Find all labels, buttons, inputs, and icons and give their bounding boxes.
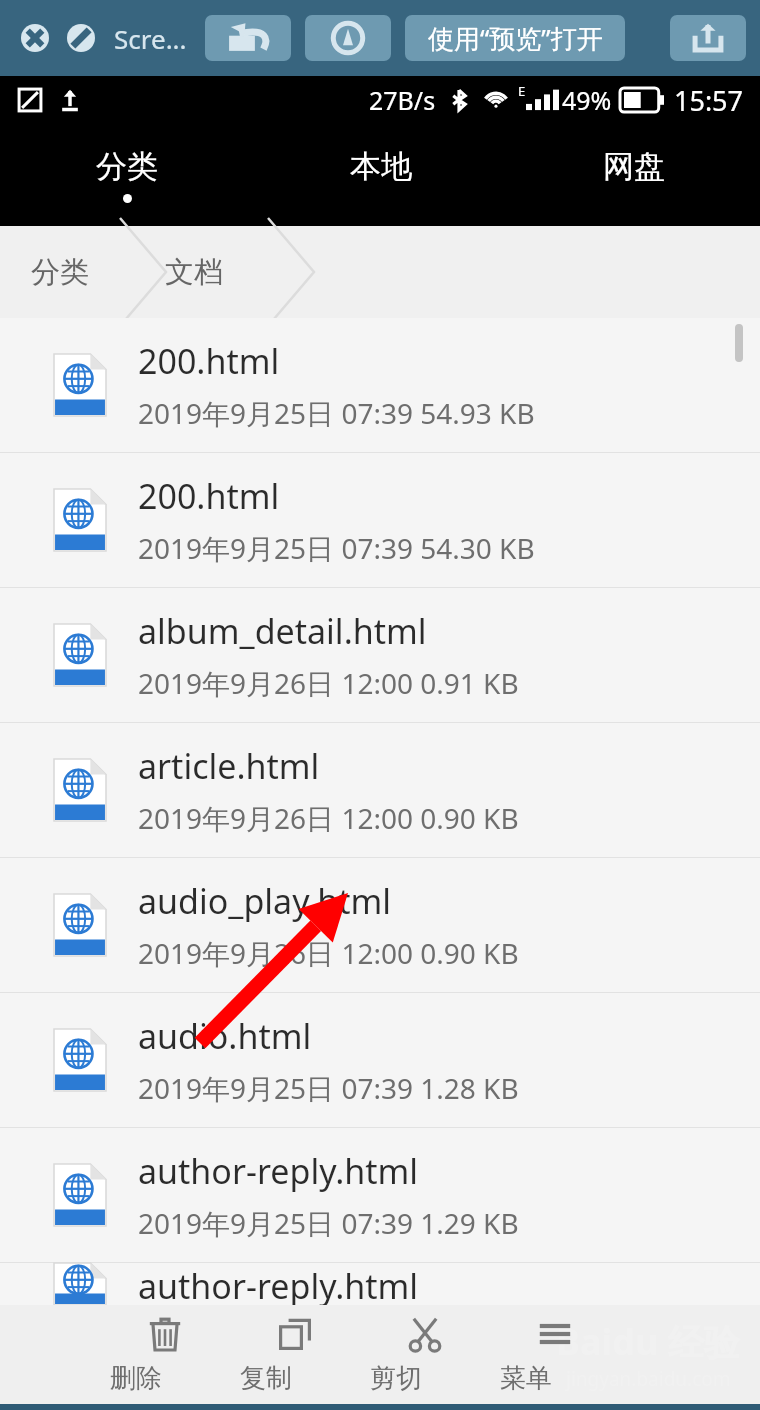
staticText: article.html	[138, 743, 320, 789]
button[interactable]: Share	[670, 15, 746, 61]
staticText: 2019年9月25日 07:39 54.30 KB	[138, 529, 535, 567]
staticText: 剪切	[370, 1362, 480, 1395]
button[interactable]: 菜单	[500, 1314, 610, 1395]
staticText: 2019年9月26日 12:00 0.91 KB	[138, 664, 519, 702]
staticText: E	[518, 82, 526, 100]
button[interactable]: author-reply.html	[0, 1128, 760, 1262]
staticText: 2019年9月25日 07:39 1.29 KB	[138, 1204, 519, 1242]
button[interactable]: 200.html	[0, 453, 760, 587]
button[interactable]: audio_play.html	[0, 858, 760, 992]
button[interactable]: album_detail.html	[0, 588, 760, 722]
button[interactable]: 网盘	[507, 124, 760, 226]
staticText: 网盘	[603, 147, 665, 186]
button[interactable]: audio.html	[0, 993, 760, 1127]
staticText: Scre...	[114, 21, 187, 56]
staticText: 菜单	[500, 1362, 610, 1395]
button[interactable]: 文档	[120, 226, 268, 318]
button[interactable]: 本地	[254, 124, 507, 226]
staticText: 200.html	[138, 338, 280, 384]
button[interactable]: author-reply.html	[0, 1263, 760, 1305]
button[interactable]: 200.html	[0, 318, 760, 452]
button[interactable]: Delete	[64, 21, 98, 55]
button[interactable]: 复制	[240, 1314, 350, 1395]
button[interactable]: Markup	[305, 15, 391, 61]
staticText: author-reply.html	[138, 1263, 419, 1305]
staticText: 2019年9月25日 07:39 54.93 KB	[138, 394, 535, 432]
button[interactable]: 删除	[110, 1314, 220, 1395]
button[interactable]: Rotate	[205, 15, 291, 61]
staticText: 2019年9月26日 12:00 0.90 KB	[138, 934, 519, 972]
staticText: 删除	[110, 1362, 220, 1395]
staticText: 分类	[31, 254, 89, 291]
staticText: 使用“预览”打开	[428, 20, 603, 56]
button[interactable]: Close	[18, 21, 52, 55]
staticText: Baidu 经验	[556, 1317, 740, 1366]
button[interactable]: 使用“预览”打开	[405, 15, 625, 61]
staticText: album_detail.html	[138, 608, 427, 654]
staticText: 文档	[165, 254, 223, 291]
staticText: 分类	[96, 147, 158, 186]
button[interactable]: 剪切	[370, 1314, 480, 1395]
staticText: 15:57	[674, 82, 744, 119]
staticText: author-reply.html	[138, 1148, 419, 1194]
staticText: 200.html	[138, 473, 280, 519]
staticText: 27B/s	[369, 83, 436, 117]
staticText: audio_play.html	[138, 878, 392, 924]
staticText: 49%	[562, 83, 612, 117]
staticText: 复制	[240, 1362, 350, 1395]
staticText: audio.html	[138, 1013, 312, 1059]
staticText: 2019年9月26日 12:00 0.90 KB	[138, 799, 519, 837]
button[interactable]: article.html	[0, 723, 760, 857]
staticText: 本地	[350, 147, 412, 186]
button[interactable]: 分类	[0, 124, 254, 226]
staticText: 2019年9月25日 07:39 1.28 KB	[138, 1069, 519, 1107]
button[interactable]: 分类	[0, 226, 120, 318]
